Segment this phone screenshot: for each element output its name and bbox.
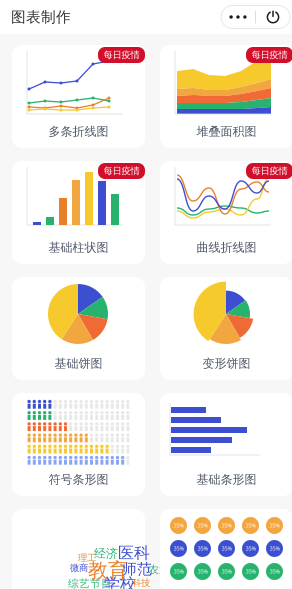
staticText: 每日疫情 xyxy=(103,49,139,61)
button[interactable]: 多条折线图 xyxy=(12,45,145,148)
button[interactable]: 变形饼图 xyxy=(160,277,292,380)
staticText: 词云图 xyxy=(60,588,96,589)
staticText: 35% xyxy=(221,545,231,552)
staticText: 变形饼图 xyxy=(202,356,250,371)
button[interactable]: Close xyxy=(256,5,290,28)
button[interactable]: 基础柱状图 xyxy=(12,161,145,264)
staticText: 理工 xyxy=(78,552,96,564)
staticText: 35% xyxy=(173,545,183,552)
staticText: 图表制作 xyxy=(11,8,71,26)
staticText: 35% xyxy=(245,522,255,529)
staticText: 学校 xyxy=(104,574,136,589)
button[interactable]: 堆叠面积图 xyxy=(160,45,292,148)
staticText: 综艺节目 xyxy=(68,577,112,589)
staticText: 35% xyxy=(221,568,231,575)
staticText: 35% xyxy=(269,568,279,575)
staticText: 基础饼图 xyxy=(54,356,102,371)
staticText: 多条折线图 xyxy=(48,124,108,139)
staticText: 35% xyxy=(197,545,207,552)
staticText: 35% xyxy=(173,568,183,575)
button[interactable]: 基础条形图 xyxy=(160,393,292,496)
staticText: 教育 xyxy=(88,558,128,583)
button[interactable]: 经济 xyxy=(12,509,145,589)
button[interactable]: 35% xyxy=(160,509,292,589)
staticText: 35% xyxy=(173,522,183,529)
staticText: 35% xyxy=(221,522,231,529)
staticText: 科技 xyxy=(132,577,150,589)
staticText: 医科 xyxy=(118,543,150,563)
button[interactable]: 曲线折线图 xyxy=(160,161,292,264)
staticText: 基础柱状图 xyxy=(48,240,108,255)
button[interactable]: 基础饼图 xyxy=(12,277,145,380)
staticText: 经济 xyxy=(94,546,118,561)
staticText: 每日疫情 xyxy=(251,165,287,177)
staticText: 堆叠面积图 xyxy=(196,124,256,139)
staticText: 微商 xyxy=(70,562,88,574)
button[interactable]: 符号条形图 xyxy=(12,393,145,496)
staticText: 每日疫情 xyxy=(103,165,139,177)
staticText: 35% xyxy=(197,522,207,529)
staticText: 曲线折线图 xyxy=(196,240,256,255)
staticText: 35% xyxy=(269,545,279,552)
staticText: 35% xyxy=(197,568,207,575)
button[interactable]: More xyxy=(221,5,255,28)
staticText: 农业 xyxy=(148,563,170,576)
staticText: 35% xyxy=(269,522,279,529)
staticText: 35% xyxy=(245,545,255,552)
staticText: 每日疫情 xyxy=(251,49,287,61)
staticText: 基础条形图 xyxy=(196,472,256,487)
staticText: 符号条形图 xyxy=(48,472,108,487)
staticText: 35% xyxy=(245,568,255,575)
staticText: 师范 xyxy=(122,560,152,578)
